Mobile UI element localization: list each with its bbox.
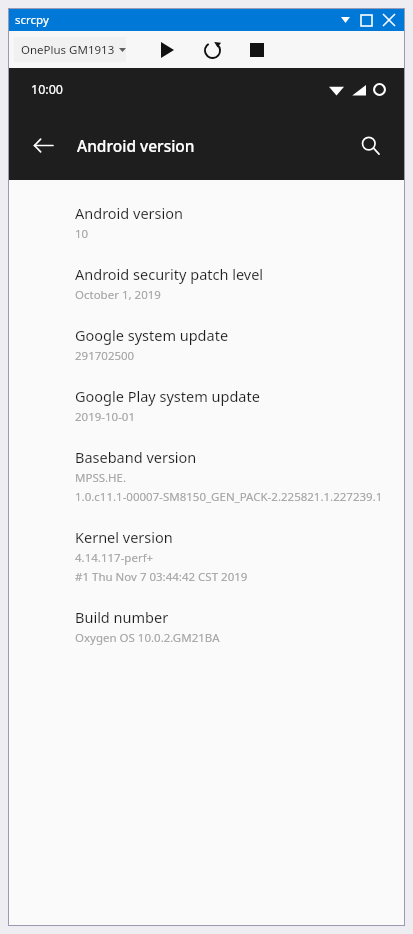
button[interactable]: Maximize: [355, 9, 377, 31]
staticText: Baseband version: [75, 447, 197, 467]
button[interactable]: Search: [348, 123, 392, 167]
staticText: 1.0.c11.1-00007-SM8150_GEN_PACK-2.225821…: [75, 489, 383, 505]
button[interactable]: Google Play system update: [9, 375, 404, 436]
button[interactable]: Navigate up: [21, 123, 65, 167]
staticText: Build number: [75, 607, 169, 627]
button[interactable]: OnePlus GM1913: [14, 37, 126, 62]
button[interactable]: Restart: [199, 37, 225, 63]
button[interactable]: Android version: [9, 192, 404, 253]
staticText: Android security patch level: [75, 264, 264, 284]
staticText: 10:00: [31, 81, 63, 98]
staticText: Google Play system update: [75, 386, 260, 406]
button[interactable]: More window options: [335, 9, 355, 31]
staticText: scrcpy: [15, 12, 49, 28]
button[interactable]: Kernel version: [9, 516, 404, 596]
staticText: Android version: [75, 203, 183, 223]
button[interactable]: Stop: [244, 37, 270, 63]
staticText: OnePlus GM1913: [21, 42, 115, 58]
button[interactable]: Close: [377, 9, 401, 31]
staticText: October 1, 2019: [75, 287, 161, 303]
staticText: #1 Thu Nov 7 03:44:42 CST 2019: [75, 569, 248, 585]
staticText: Google system update: [75, 325, 229, 345]
button[interactable]: Android security patch level: [9, 253, 404, 314]
button[interactable]: Baseband version: [9, 436, 404, 516]
button[interactable]: Start: [154, 37, 180, 63]
staticText: Android version: [77, 135, 195, 156]
staticText: 2019-10-01: [75, 409, 136, 425]
staticText: 291702500: [75, 348, 135, 364]
staticText: MPSS.HE.: [75, 470, 127, 486]
staticText: Kernel version: [75, 527, 173, 547]
button[interactable]: Build number: [9, 596, 404, 657]
staticText: Oxygen OS 10.0.2.GM21BA: [75, 630, 220, 646]
button[interactable]: Google system update: [9, 314, 404, 375]
staticText: 4.14.117-perf+: [75, 550, 154, 566]
staticText: 10: [75, 226, 89, 242]
